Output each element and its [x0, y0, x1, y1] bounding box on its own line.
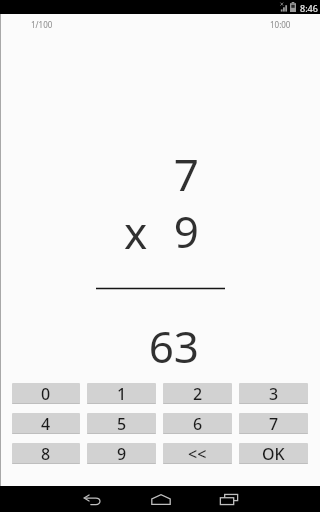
- button[interactable]: 6: [163, 413, 232, 434]
- button[interactable]: 2: [163, 383, 232, 404]
- button[interactable]: 8: [12, 443, 80, 464]
- staticText: 2: [193, 383, 203, 404]
- button[interactable]: 1: [87, 383, 156, 404]
- staticText: 6: [193, 413, 203, 434]
- staticText: 63: [129, 316, 199, 376]
- button[interactable]: 3: [239, 383, 308, 404]
- staticText: <<: [188, 443, 207, 464]
- staticText: 5: [117, 413, 127, 434]
- staticText: 10:00: [270, 19, 291, 30]
- button[interactable]: Back: [72, 486, 112, 512]
- staticText: x: [124, 202, 148, 262]
- button[interactable]: 7: [239, 413, 308, 434]
- staticText: OK: [262, 443, 285, 464]
- button[interactable]: 5: [87, 413, 156, 434]
- staticText: 9: [139, 201, 199, 261]
- button[interactable]: 0: [12, 383, 80, 404]
- button[interactable]: OK: [239, 443, 308, 464]
- staticText: 9: [117, 443, 127, 464]
- staticText: 1/100: [31, 19, 53, 30]
- button[interactable]: Recent apps: [209, 486, 249, 512]
- staticText: 0: [41, 383, 51, 404]
- staticText: 4: [41, 413, 51, 434]
- staticText: 8: [41, 443, 51, 464]
- staticText: 3: [269, 383, 279, 404]
- staticText: 7: [139, 144, 199, 204]
- staticText: 1: [117, 383, 127, 404]
- button[interactable]: Home: [141, 486, 181, 512]
- button[interactable]: <<: [163, 443, 232, 464]
- button[interactable]: 9: [87, 443, 156, 464]
- staticText: 7: [269, 413, 279, 434]
- button[interactable]: 4: [12, 413, 80, 434]
- staticText: 8:46: [300, 2, 318, 14]
